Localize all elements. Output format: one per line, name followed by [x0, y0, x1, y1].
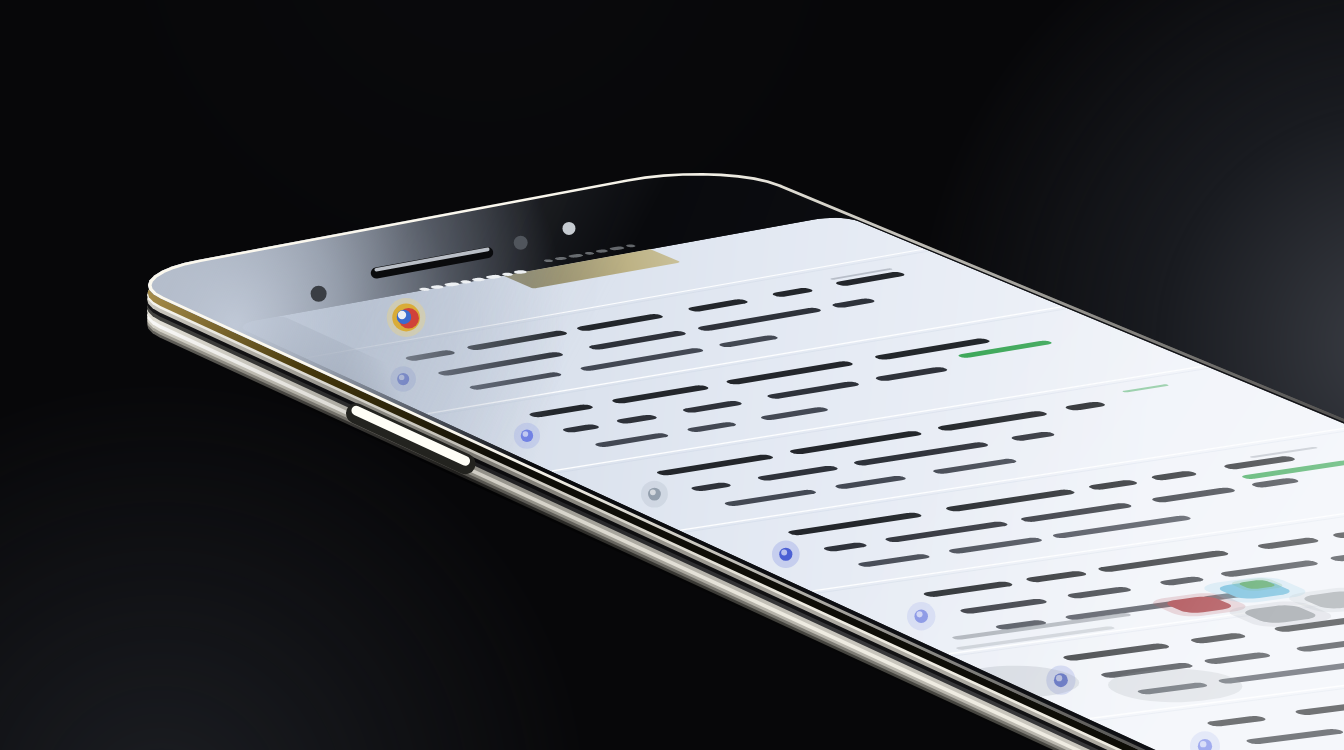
button[interactable]: List item 1: [300, 260, 940, 330]
button[interactable]: Samsung phone showing a settings list: [0, 0, 1344, 750]
button[interactable]: List item 5: [684, 548, 1324, 618]
button[interactable]: List item 3: [492, 404, 1132, 474]
button[interactable]: App shortcuts: [1130, 560, 1310, 670]
button[interactable]: List item 4: [588, 476, 1228, 546]
button[interactable]: List item 6: [780, 620, 1344, 690]
button[interactable]: List item 2: [396, 332, 1036, 402]
